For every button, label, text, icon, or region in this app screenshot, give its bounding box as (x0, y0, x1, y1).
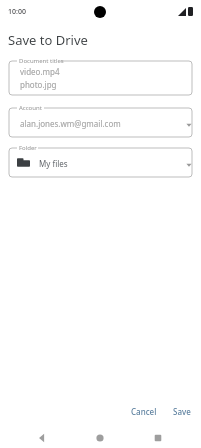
staticText: Cancel (131, 406, 157, 417)
staticText: photo.jpg (20, 79, 57, 90)
staticText: My files (39, 158, 68, 169)
other: Folder (17, 157, 30, 168)
button[interactable]: Document titles (9, 61, 192, 95)
button[interactable]: Cancel (125, 402, 163, 421)
staticText: alan.jones.wm@gmail.com (20, 118, 121, 129)
staticText: Folder (19, 144, 37, 152)
button[interactable]: Recent apps (148, 428, 168, 448)
button[interactable]: Back (32, 428, 52, 448)
button[interactable]: Home (90, 428, 110, 448)
staticText: Account (19, 104, 42, 112)
button[interactable]: Account (9, 108, 192, 137)
staticText: Save (173, 406, 191, 417)
button[interactable]: Open dropdown (184, 120, 194, 130)
staticText: 10:00 (8, 7, 26, 17)
button[interactable]: Folder (9, 148, 192, 177)
staticText: Document titles (19, 57, 64, 65)
staticText: video.mp4 (20, 66, 60, 77)
button[interactable]: Open dropdown (184, 160, 194, 170)
staticText: Save to Drive (8, 31, 88, 49)
button[interactable]: Save (167, 402, 197, 421)
